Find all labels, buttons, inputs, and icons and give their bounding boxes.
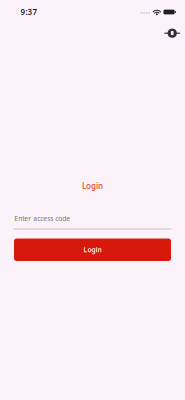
staticText: Login: [82, 181, 103, 191]
staticText: 9:37: [20, 7, 37, 17]
button[interactable]: Settings: [160, 21, 184, 45]
staticText: Login: [83, 245, 101, 254]
button[interactable]: Login: [14, 238, 171, 261]
staticText: Enter access code: [14, 214, 70, 223]
